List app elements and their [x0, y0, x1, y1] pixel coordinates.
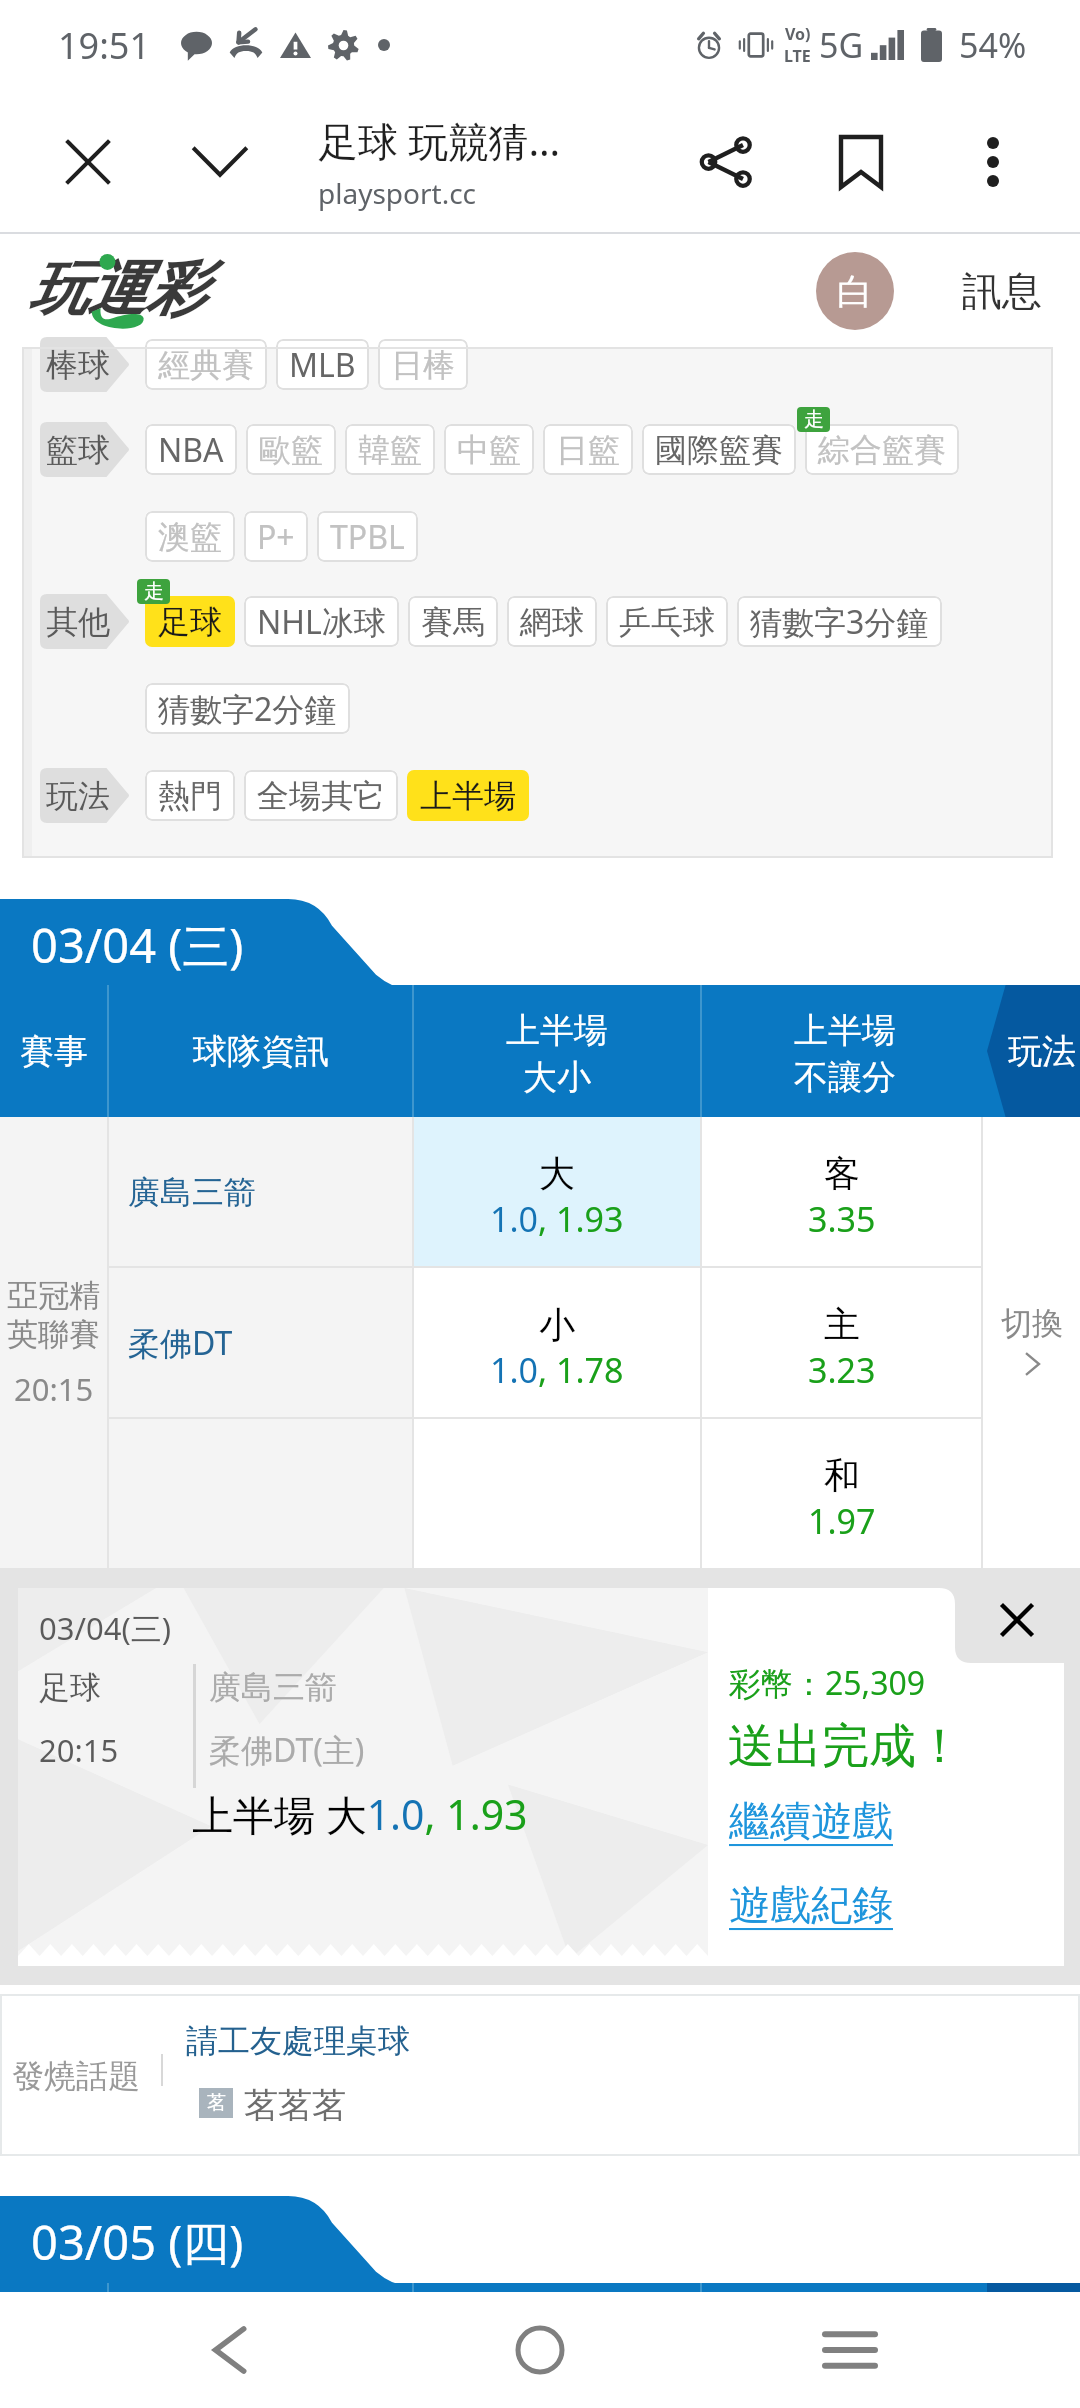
staticText: 英聯賽: [7, 1315, 100, 1354]
button[interactable]: 全場其它: [244, 770, 398, 821]
button[interactable]: 綜合籃賽: [805, 424, 959, 475]
button[interactable]: 和: [702, 1419, 981, 1568]
staticText: 其他: [46, 602, 110, 642]
button[interactable]: 廣島三箭: [109, 1117, 412, 1266]
staticText: 澳籃: [158, 517, 222, 557]
button[interactable]: 猜數字3分鐘: [737, 596, 942, 647]
staticText: 廣島三箭: [128, 1172, 256, 1212]
button[interactable]: 熱門: [145, 770, 235, 821]
staticText: 小: [539, 1302, 575, 1347]
button[interactable]: NBA: [145, 424, 237, 475]
staticText: 彩幣：25,309: [729, 1661, 926, 1705]
staticText: 20:15: [39, 1729, 119, 1771]
button[interactable]: 小: [414, 1268, 700, 1417]
button[interactable]: Bookmark: [796, 96, 926, 228]
button[interactable]: 柔佛DT: [109, 1268, 412, 1417]
button[interactable]: 訊息: [962, 266, 1042, 316]
button[interactable]: 網球: [507, 596, 597, 647]
staticText: 籃球: [46, 430, 110, 470]
button[interactable]: 玩運彩 home: [30, 248, 226, 344]
button[interactable]: 猜數字2分鐘: [145, 683, 350, 734]
staticText: 20:15: [14, 1368, 94, 1410]
staticText: 茗茗茗: [244, 2084, 346, 2127]
button[interactable]: P+: [244, 511, 308, 562]
staticText: 韓籃: [358, 430, 422, 470]
button[interactable]: Close ticket: [976, 1579, 1058, 1661]
button[interactable]: 遊戲紀錄: [729, 1880, 893, 1932]
staticText: 廣島三箭: [209, 1667, 337, 1707]
staticText: 乒乓球: [619, 602, 715, 642]
staticText: NBA: [158, 428, 224, 472]
button[interactable]: 繼續遊戲: [729, 1796, 893, 1848]
button[interactable]: 乒乓球: [606, 596, 728, 647]
staticText: 綜合籃賽: [818, 430, 946, 470]
button[interactable]: 白: [816, 252, 894, 330]
staticText: 網球: [520, 602, 584, 642]
button[interactable]: Close: [22, 96, 154, 228]
button[interactable]: 日籃: [543, 424, 633, 475]
staticText: MLB: [289, 343, 356, 387]
staticText: 足球 玩競猜…: [318, 113, 561, 168]
button[interactable]: 棒球: [40, 337, 131, 392]
staticText: 亞冠精: [7, 1276, 100, 1315]
button[interactable]: 主: [702, 1268, 981, 1417]
button[interactable]: 日棒: [378, 339, 468, 390]
staticText: 訊息: [962, 266, 1042, 316]
staticText: 遊戲紀錄: [729, 1880, 893, 1932]
button[interactable]: TPBL: [317, 511, 418, 562]
button[interactable]: 上半場: [407, 770, 529, 821]
staticText: 國際籃賽: [655, 430, 783, 470]
button[interactable]: 足球: [145, 596, 235, 647]
button[interactable]: Collapse: [154, 96, 286, 228]
button[interactable]: 經典賽: [145, 339, 267, 390]
button[interactable]: MLB: [276, 339, 369, 390]
staticText: LTE: [784, 45, 811, 67]
staticText: 切換: [1001, 1304, 1063, 1343]
staticText: 5G: [819, 22, 864, 68]
staticText: 中籃: [457, 430, 521, 470]
button[interactable]: 澳籃: [145, 511, 235, 562]
button[interactable]: 賽馬: [408, 596, 498, 647]
button[interactable]: 其他: [40, 594, 131, 649]
staticText: 請工友處理桌球: [186, 2021, 410, 2061]
staticText: 足球: [158, 602, 222, 642]
staticText: 日籃: [556, 430, 620, 470]
button[interactable]: 歐籃: [246, 424, 336, 475]
button[interactable]: More options: [930, 96, 1056, 228]
staticText: 19:51: [58, 21, 151, 70]
staticText: 大: [539, 1151, 575, 1196]
button[interactable]: 韓籃: [345, 424, 435, 475]
staticText: playsport.cc: [318, 174, 477, 212]
staticText: 走: [804, 407, 824, 432]
button[interactable]: 中籃: [444, 424, 534, 475]
staticText: 送出完成！: [728, 1717, 963, 1776]
button[interactable]: 籃球: [40, 422, 131, 477]
staticText: 賽馬: [421, 602, 485, 642]
staticText: 和: [824, 1453, 860, 1498]
staticText: 玩法: [1008, 1030, 1076, 1073]
button[interactable]: Home: [480, 2292, 600, 2408]
staticText: 棒球: [46, 345, 110, 385]
staticText: 發燒話題: [12, 2056, 140, 2096]
staticText: 玩法: [46, 776, 110, 816]
button[interactable]: 發燒話題: [0, 1994, 1080, 2156]
button[interactable]: 切換: [983, 1117, 1080, 1568]
staticText: 歐籃: [259, 430, 323, 470]
button[interactable]: 大: [414, 1117, 700, 1266]
staticText: 日棒: [391, 345, 455, 385]
button[interactable]: 國際籃賽: [642, 424, 796, 475]
button[interactable]: Back: [170, 2292, 290, 2408]
staticText: 03/05 (四): [31, 2210, 244, 2274]
staticText: 3.23: [808, 1347, 876, 1393]
button[interactable]: NHL冰球: [244, 596, 399, 647]
button[interactable]: 玩法: [40, 768, 131, 823]
button[interactable]: Recent apps: [790, 2292, 910, 2408]
button[interactable]: 客: [702, 1117, 981, 1266]
staticText: TPBL: [330, 515, 405, 559]
staticText: 1.0, 1.78: [490, 1347, 624, 1393]
staticText: 上半場: [420, 776, 516, 816]
staticText: 足球: [39, 1668, 101, 1707]
button[interactable]: Share: [662, 96, 792, 228]
